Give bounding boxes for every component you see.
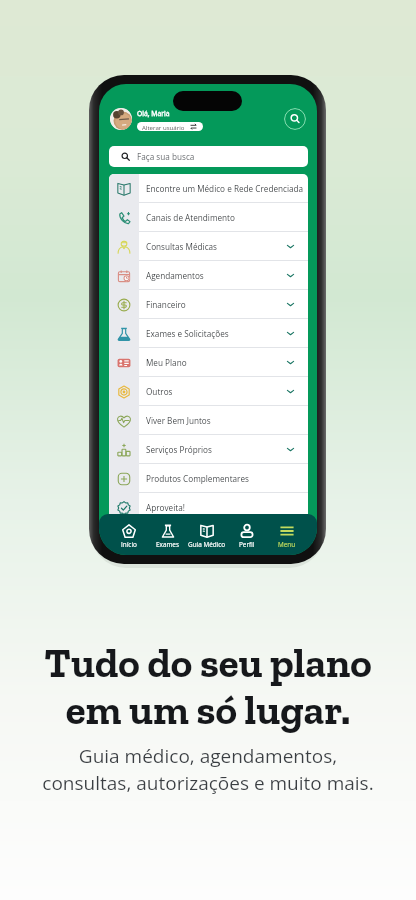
staticText: Financeiro xyxy=(146,299,186,310)
button[interactable]: Produtos Complementares xyxy=(109,464,308,493)
button[interactable]: Agendamentos xyxy=(109,261,308,290)
button[interactable]: Aproveita! xyxy=(109,493,308,522)
button[interactable]: Consultas Médicas xyxy=(109,232,308,261)
button[interactable]: Outros xyxy=(109,377,308,406)
staticText: Exames e Solicitações xyxy=(146,328,229,339)
staticText: Perfil xyxy=(239,540,255,549)
button[interactable]: Alterar usuário xyxy=(137,122,203,131)
button[interactable]: Encontre um Médico e Rede Credenciada xyxy=(109,174,308,203)
staticText: Alterar usuário xyxy=(142,123,185,131)
staticText: Meu Plano xyxy=(146,357,187,368)
button[interactable]: Faça sua busca xyxy=(109,146,308,167)
button[interactable]: Meu Plano xyxy=(109,348,308,377)
staticText: Consultas Médicas xyxy=(146,241,218,252)
staticText: Início xyxy=(121,540,137,549)
button[interactable]: Canais de Atendimento xyxy=(109,203,308,232)
button[interactable]: Menu xyxy=(267,514,307,555)
staticText: Produtos Complementares xyxy=(146,473,249,484)
button[interactable]: Início xyxy=(109,514,148,555)
staticText: Outros xyxy=(146,386,173,397)
staticText: Canais de Atendimento xyxy=(146,212,235,223)
button[interactable]: Perfil xyxy=(227,514,267,555)
button[interactable]: Serviços Próprios xyxy=(109,435,308,464)
staticText: Viver Bem Juntos xyxy=(146,415,211,426)
staticText: Menu xyxy=(278,540,296,549)
button[interactable]: Financeiro xyxy=(109,290,308,319)
button[interactable]: Buscar xyxy=(284,108,306,130)
staticText: Aproveita! xyxy=(146,502,185,513)
button[interactable]: Guia Médico xyxy=(187,514,227,555)
staticText: Faça sua busca xyxy=(137,151,195,162)
button[interactable]: Exames xyxy=(148,514,187,555)
staticText: Guia Médico xyxy=(188,540,226,549)
staticText: Exames xyxy=(156,540,179,549)
staticText: Agendamentos xyxy=(146,270,204,281)
button[interactable]: Viver Bem Juntos xyxy=(109,406,308,435)
staticText: Encontre um Médico e Rede Credenciada xyxy=(146,183,304,194)
staticText: Olá, Maria xyxy=(137,109,170,118)
button[interactable]: Exames e Solicitações xyxy=(109,319,308,348)
staticText: Tudo do seu plano em um só lugar. xyxy=(0,638,416,734)
staticText: Serviços Próprios xyxy=(146,444,212,455)
staticText: Guia médico, agendamentos, consultas, au… xyxy=(0,743,416,796)
